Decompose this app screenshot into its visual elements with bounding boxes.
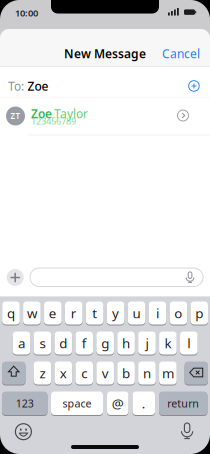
staticText: e [49,304,57,322]
staticText: 123 [16,396,34,410]
button[interactable]: e [44,301,62,325]
button[interactable]: u [128,301,145,325]
button[interactable]: Emoji [15,424,31,440]
staticText: y [112,304,119,322]
staticText: g [101,334,109,352]
staticText: u [132,304,140,322]
staticText: space [62,396,91,410]
button[interactable]: z [34,361,51,385]
staticText: ZT [10,111,20,121]
staticText: 10:00 [15,7,38,19]
staticText: w [27,304,37,322]
button[interactable]: Add contact [189,81,199,91]
staticText: c [81,364,87,382]
button[interactable]: Shift [2,361,25,385]
staticText: l [187,334,190,352]
button[interactable]: f [75,331,93,355]
button[interactable]: o [170,301,187,325]
button[interactable]: Dictation [181,423,193,439]
button[interactable]: v [96,361,114,385]
staticText: v [102,364,109,382]
staticText: q [7,304,15,322]
staticText: m [162,364,174,382]
button[interactable]: return [159,391,207,415]
button[interactable]: c [75,361,93,385]
staticText: h [122,334,130,352]
button[interactable]: k [159,331,177,355]
staticText: i [156,304,159,322]
button[interactable]: space [51,391,103,415]
staticText: d [59,334,67,352]
button[interactable]: ZT [0,97,210,134]
button[interactable]: q [2,301,20,325]
button[interactable]: r [65,301,83,325]
staticText: x [60,364,67,382]
button[interactable]: s [34,331,51,355]
staticText: j [145,334,148,352]
button[interactable]: Contact info [177,110,188,121]
button[interactable]: w [23,301,41,325]
button[interactable]: Cancel [162,46,200,61]
staticText: t [92,304,97,322]
button[interactable]: m [159,361,177,385]
button[interactable]: t [86,301,103,325]
staticText: . [142,394,146,412]
button[interactable]: . [132,391,155,415]
staticText: o [174,304,182,322]
staticText: return [167,396,199,410]
button[interactable]: Apps [7,269,24,286]
staticText: a [18,334,25,352]
button[interactable]: j [138,331,156,355]
button[interactable]: y [107,301,124,325]
staticText: New Message [64,46,146,61]
staticText: @ [112,394,124,412]
button[interactable]: n [138,361,156,385]
button[interactable]: b [117,361,135,385]
staticText: k [164,334,171,352]
staticText: To: [8,78,24,94]
staticText: n [143,364,151,382]
staticText: b [122,364,130,382]
button[interactable]: g [96,331,114,355]
button[interactable]: h [117,331,135,355]
staticText: f [82,334,87,352]
button[interactable]: Message text field [30,268,203,286]
staticText: z [39,364,45,382]
staticText: Cancel [162,46,200,61]
button[interactable]: Delete [184,361,208,385]
staticText: r [71,304,77,322]
button[interactable]: p [190,301,208,325]
button[interactable]: l [180,331,198,355]
staticText: Taylor [54,106,88,121]
staticText: s [39,334,45,352]
button[interactable]: x [54,361,72,385]
button[interactable]: i [149,301,166,325]
staticText: Zoe [31,106,52,121]
button[interactable]: 123 [2,391,47,415]
button[interactable]: d [54,331,72,355]
staticText: p [195,304,203,322]
button[interactable]: a [13,331,30,355]
staticText: 123456789 [31,115,76,127]
staticText: Zoe [27,78,48,94]
button[interactable]: @ [107,391,128,415]
